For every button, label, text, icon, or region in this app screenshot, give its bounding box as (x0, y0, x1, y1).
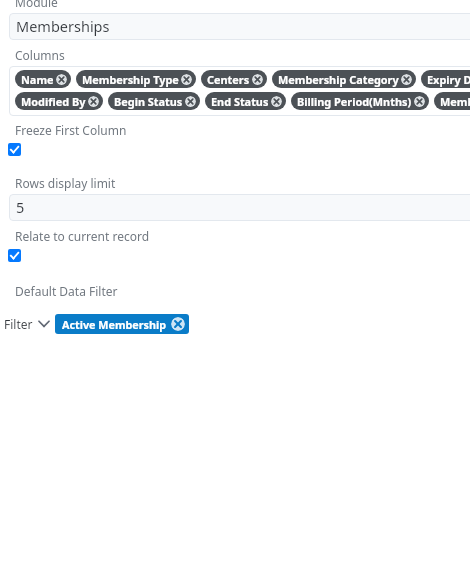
button[interactable]: Centers (201, 70, 267, 88)
staticText: Billing Period(Mnths) (297, 94, 412, 109)
staticText: Active Membership (62, 317, 167, 332)
button[interactable]: Membership (434, 92, 470, 110)
staticText: Expiry Date (427, 72, 470, 87)
staticText: Memberships (16, 16, 110, 36)
staticText: Modified By (21, 94, 86, 109)
staticText: Membership (440, 94, 470, 109)
staticText: Filter (4, 316, 33, 332)
button[interactable]: Begin Status (108, 92, 200, 110)
button[interactable]: End Status (205, 92, 286, 110)
button[interactable]: 5 (9, 194, 470, 221)
button[interactable]: Modified By (15, 92, 103, 110)
button[interactable]: Remove Centers (252, 74, 263, 85)
button[interactable]: Filter (4, 316, 50, 332)
staticText: Membership Type (82, 72, 179, 87)
button[interactable]: Name (15, 70, 71, 88)
button[interactable]: Remove Membership Type (181, 74, 192, 85)
button[interactable]: Remove Membership Category (401, 74, 412, 85)
staticText: Rows display limit (15, 175, 116, 191)
button[interactable]: Billing Period(Mnths) (291, 92, 429, 110)
button[interactable]: Remove Active Membership filter (171, 317, 185, 331)
staticText: Module (15, 0, 58, 10)
button[interactable]: Active Membership (55, 314, 189, 334)
button[interactable]: Expiry Date (421, 70, 470, 88)
button[interactable]: Remove Modified By (88, 96, 99, 107)
button[interactable]: Remove Begin Status (185, 96, 196, 107)
staticText: Centers (207, 72, 250, 87)
button[interactable]: Remove Name (56, 74, 67, 85)
staticText: Name (21, 72, 54, 87)
button[interactable]: Remove Billing Period(Mnths) (414, 96, 425, 107)
staticText: End Status (211, 94, 269, 109)
button[interactable]: Name (9, 66, 470, 116)
staticText: Freeze First Column (15, 122, 127, 138)
button[interactable]: Freeze First Column, checked (8, 143, 21, 156)
staticText: Begin Status (114, 94, 183, 109)
staticText: Relate to current record (15, 228, 150, 244)
staticText: 5 (16, 197, 25, 217)
button[interactable]: Membership Type (76, 70, 196, 88)
button[interactable]: Membership Category (272, 70, 416, 88)
button[interactable]: Remove End Status (271, 96, 282, 107)
staticText: Default Data Filter (15, 283, 118, 299)
staticText: Columns (15, 47, 65, 63)
button[interactable]: Memberships (9, 13, 470, 40)
staticText: Membership Category (278, 72, 399, 87)
button[interactable]: Relate to current record, checked (8, 249, 21, 262)
